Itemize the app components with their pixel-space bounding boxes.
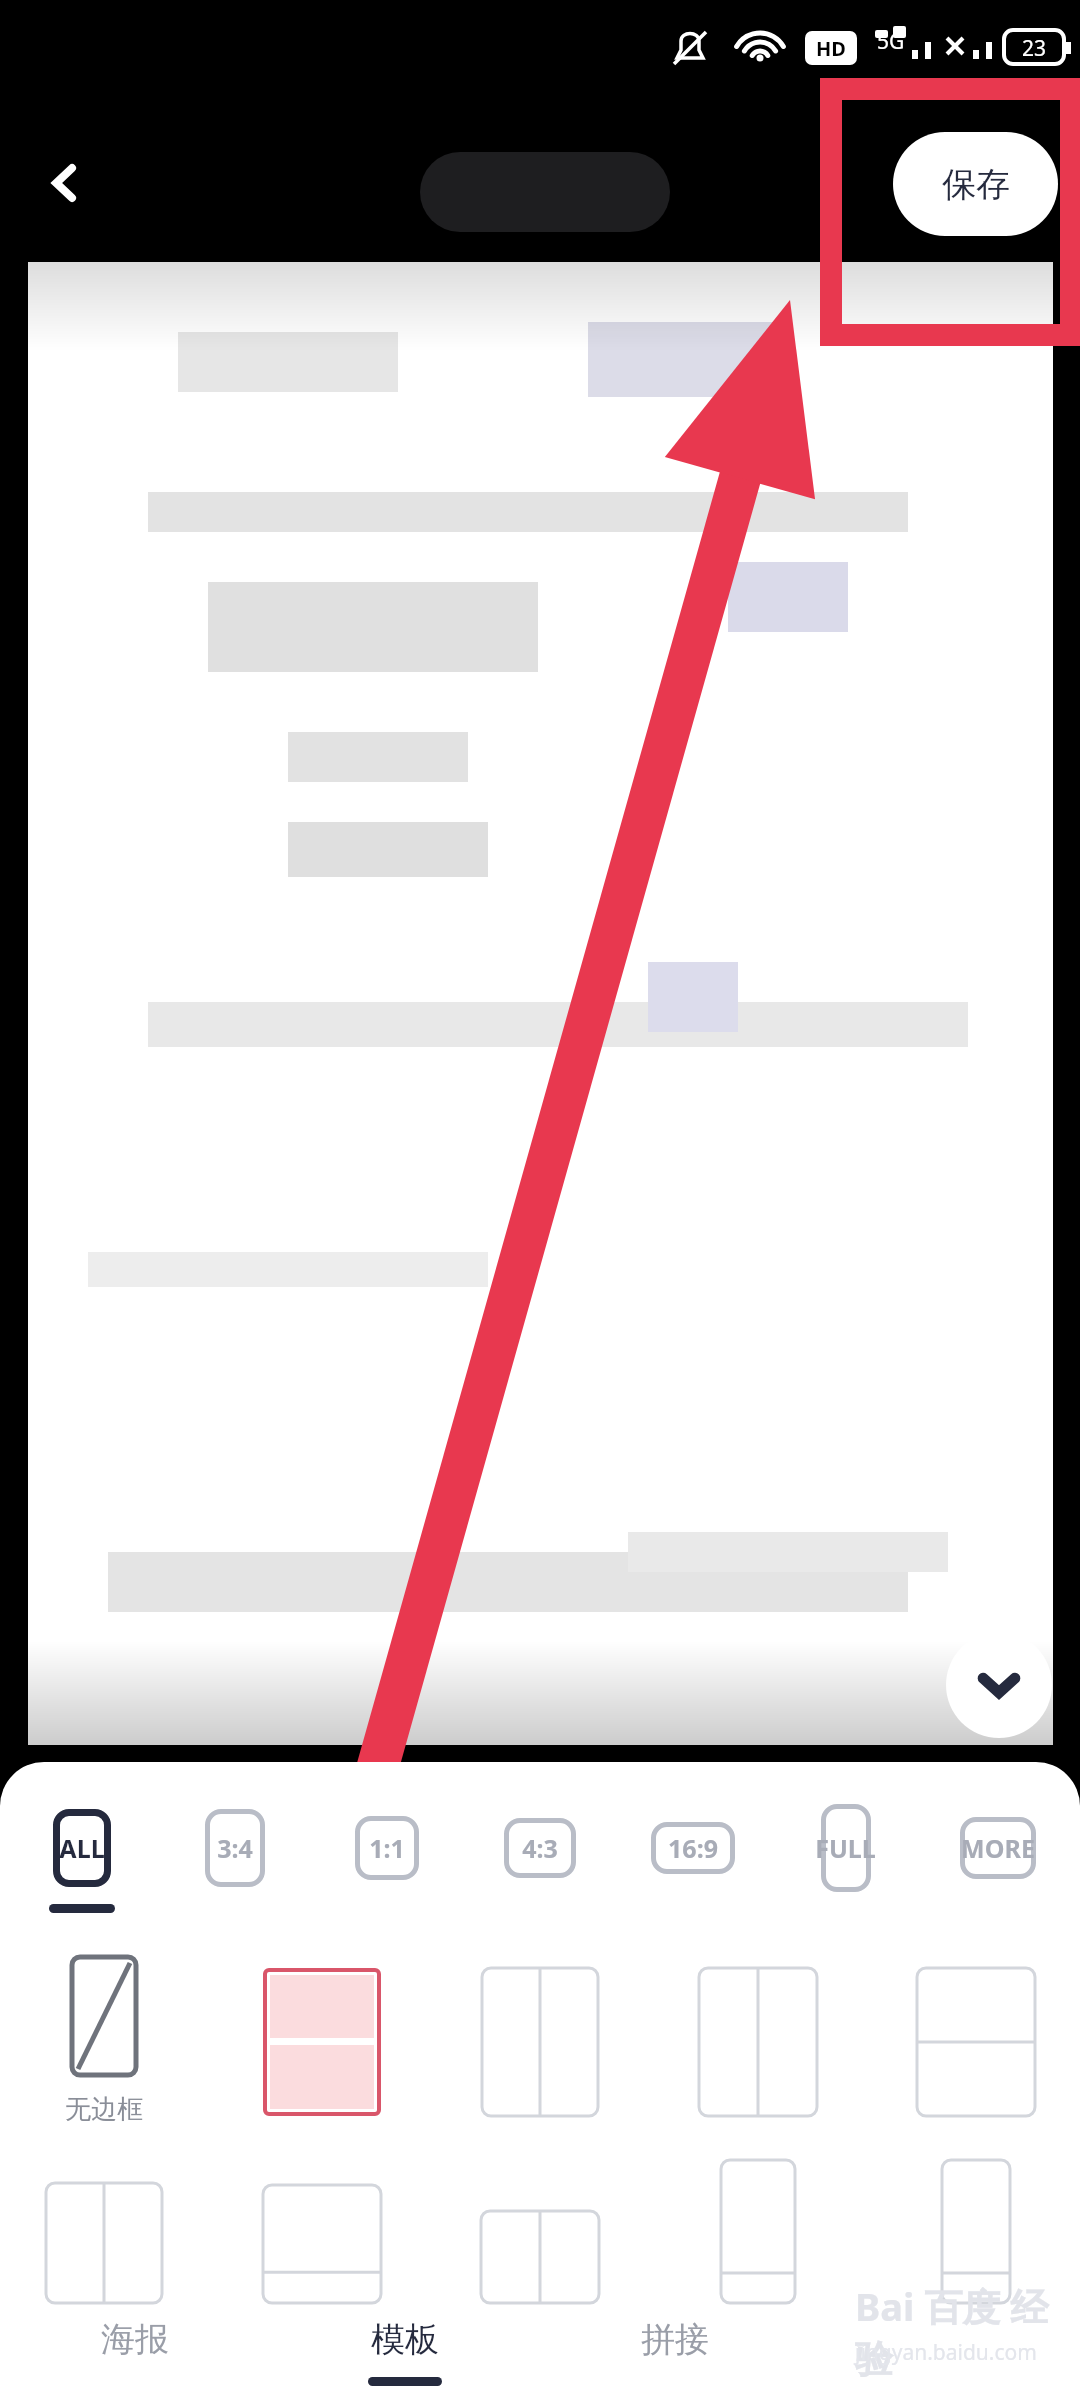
button[interactable] <box>460 1968 620 2116</box>
staticText: 模板 <box>371 2318 439 2361</box>
button[interactable] <box>678 2160 838 2303</box>
staticText: 16:9 <box>668 1831 718 1865</box>
staticText: FULL <box>815 1831 876 1865</box>
button[interactable] <box>24 2183 184 2303</box>
staticText: 23 <box>1022 34 1047 63</box>
staticText: 拼接 <box>641 2318 709 2361</box>
button[interactable] <box>242 1968 402 2116</box>
button[interactable]: 模板 <box>270 2303 540 2400</box>
staticText: 4:3 <box>522 1831 558 1865</box>
button[interactable]: Back <box>22 140 108 226</box>
staticText: 无边框 <box>65 2093 143 2126</box>
staticText: 5G <box>877 27 905 56</box>
button[interactable]: 16:9 <box>625 1802 761 1904</box>
button[interactable]: 海报 <box>0 2303 270 2400</box>
staticText: 3:4 <box>217 1831 253 1865</box>
button[interactable]: 拼接 <box>540 2303 810 2400</box>
staticText: 1:1 <box>369 1831 405 1865</box>
button[interactable]: 1:1 <box>319 1802 455 1904</box>
staticText: 保存 <box>942 163 1010 206</box>
staticText: 海报 <box>101 2318 169 2361</box>
button[interactable]: 保存 <box>893 132 1058 236</box>
button[interactable]: Collapse <box>946 1632 1052 1738</box>
staticText: HD <box>816 35 846 62</box>
button[interactable]: 无边框 <box>24 1957 184 2126</box>
button[interactable]: 3:4 <box>167 1802 303 1904</box>
button[interactable]: MORE <box>930 1802 1066 1904</box>
button[interactable] <box>896 2160 1056 2303</box>
button[interactable]: FULL <box>777 1802 913 1904</box>
button[interactable] <box>460 2211 620 2303</box>
staticText: jingyan.baidu.com <box>855 2338 1037 2367</box>
button[interactable] <box>420 152 670 232</box>
button[interactable]: ALL <box>14 1802 150 1913</box>
staticText: Bai 百度 经验 <box>855 2280 1065 2384</box>
button[interactable] <box>678 1968 838 2116</box>
staticText: MORE <box>961 1831 1035 1865</box>
button[interactable]: 4:3 <box>472 1802 608 1904</box>
button[interactable] <box>896 1968 1056 2116</box>
staticText: ALL <box>59 1831 105 1865</box>
button[interactable] <box>242 2185 402 2303</box>
